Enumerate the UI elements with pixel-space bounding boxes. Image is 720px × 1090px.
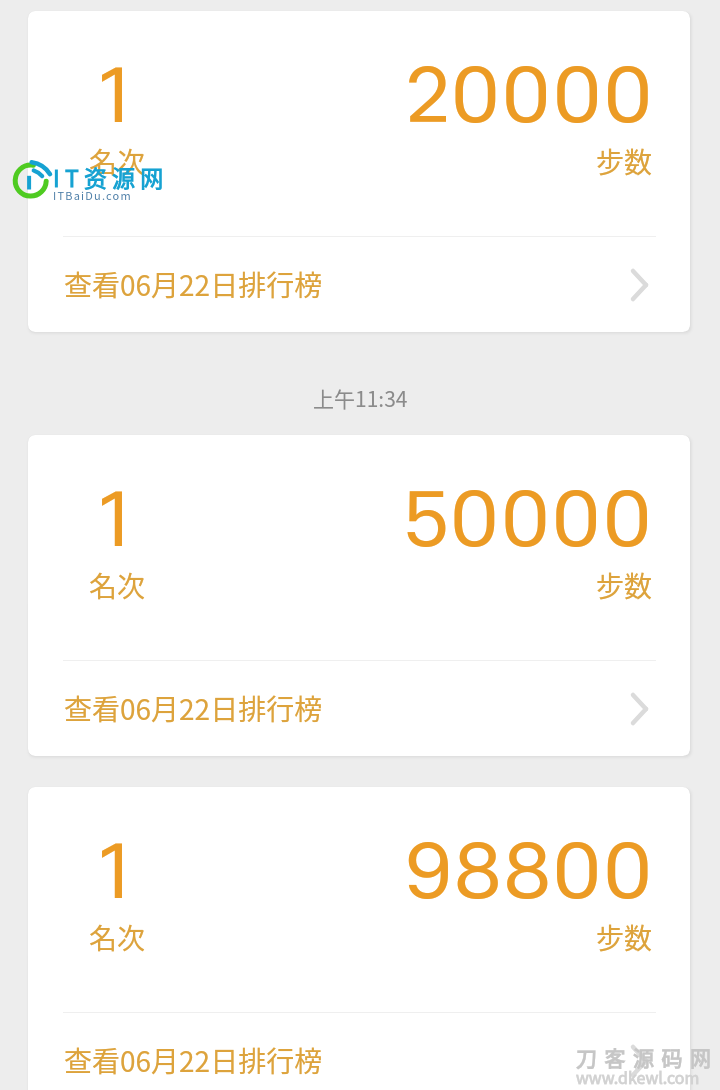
staticText: 1 [100,48,129,143]
staticText: 50000 [403,472,653,567]
button[interactable]: 20000 [28,11,690,332]
staticText: 20000 [405,48,653,143]
staticText: 步数 [596,141,653,182]
staticText: 上午11:34 [313,383,408,413]
other: View ranking [631,693,648,725]
button[interactable]: 98800 [28,787,690,1090]
staticText: www.dkewl.com [576,1065,700,1088]
other: View ranking [631,269,648,301]
staticText: 1 [100,824,129,919]
staticText: ITBaiDu.com [53,187,132,203]
staticText: 98800 [404,824,653,919]
staticText: 刀客源码网 [576,1042,719,1072]
staticText: 1 [100,472,129,567]
staticText: 查看06月22日排行榜 [64,1040,323,1081]
button[interactable]: 50000 [28,435,690,756]
button[interactable]: 查看06月22日排行榜 [28,237,690,332]
staticText: 步数 [596,917,653,958]
staticText: IT资源网 [53,160,169,193]
button[interactable]: 查看06月22日排行榜 [28,661,690,756]
staticText: 查看06月22日排行榜 [64,688,323,729]
staticText: 名次 [89,565,146,606]
button[interactable]: 查看06月22日排行榜 [28,1013,690,1090]
other: View ranking [631,1045,648,1077]
staticText: 查看06月22日排行榜 [64,264,323,305]
staticText: 名次 [89,917,146,958]
staticText: 步数 [596,565,653,606]
staticText: 名次 [89,141,146,182]
